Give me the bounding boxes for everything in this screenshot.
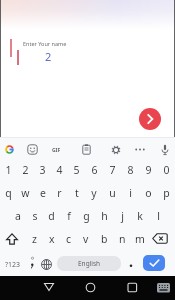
staticText: z [32, 232, 37, 246]
button[interactable]: 6 [85, 158, 103, 181]
staticText: e [40, 186, 46, 200]
button[interactable]: 2 [17, 158, 34, 181]
button[interactable]: p [157, 181, 175, 204]
button[interactable]: r [51, 181, 68, 204]
staticText: h [101, 209, 108, 223]
button[interactable] [26, 253, 39, 276]
staticText: Enter Your name [23, 40, 67, 47]
button[interactable]: 0 [157, 158, 175, 181]
button[interactable]: o [139, 181, 157, 204]
staticText: 0 [163, 163, 170, 177]
button[interactable]: 4 [51, 158, 68, 181]
staticText: 8 [127, 163, 134, 177]
staticText: x [49, 232, 55, 246]
button[interactable]: GIF [48, 145, 64, 155]
button[interactable] [124, 253, 138, 276]
staticText: r [57, 186, 62, 200]
button[interactable] [133, 144, 147, 155]
staticText: 5 [73, 163, 80, 177]
button[interactable] [27, 144, 38, 155]
staticText: p [163, 186, 170, 200]
button[interactable]: x [43, 227, 60, 250]
button[interactable]: 3 [34, 158, 51, 181]
staticText: 4 [56, 163, 63, 177]
button[interactable]: l [149, 204, 167, 227]
staticText: d [48, 209, 55, 223]
staticText: t [75, 186, 79, 200]
button[interactable]: English [57, 256, 121, 271]
button[interactable]: a [9, 204, 26, 227]
staticText: n [119, 232, 126, 246]
staticText: 2 [45, 49, 52, 64]
button[interactable] [143, 255, 165, 271]
staticText: g [83, 209, 90, 223]
staticText: 1 [5, 163, 12, 177]
button[interactable]: q [0, 181, 17, 204]
button[interactable]: d [43, 204, 60, 227]
staticText: English [78, 259, 101, 268]
button[interactable]: i [121, 181, 139, 204]
staticText: GIF [52, 147, 61, 154]
button[interactable]: j [113, 204, 131, 227]
button[interactable]: g [77, 204, 95, 227]
staticText: u [109, 186, 116, 200]
staticText: v [83, 232, 89, 246]
staticText: a [15, 209, 21, 223]
staticText: l [157, 209, 160, 223]
button[interactable]: n [113, 227, 131, 250]
button[interactable]: h [95, 204, 113, 227]
button[interactable]: b [95, 227, 113, 250]
button[interactable] [148, 227, 172, 250]
staticText: q [5, 186, 12, 200]
staticText: k [137, 209, 143, 223]
button[interactable]: 1 [0, 158, 17, 181]
button[interactable]: u [103, 181, 121, 204]
button[interactable]: k [131, 204, 149, 227]
button[interactable]: 8 [121, 158, 139, 181]
button[interactable]: w [17, 181, 34, 204]
button[interactable]: z [26, 227, 43, 250]
button[interactable]: f [60, 204, 77, 227]
button[interactable]: s [26, 204, 43, 227]
button[interactable]: e [34, 181, 51, 204]
staticText: o [145, 186, 152, 200]
button[interactable]: 7 [103, 158, 121, 181]
button[interactable]: t [68, 181, 85, 204]
button[interactable]: c [60, 227, 77, 250]
button[interactable]: m [131, 227, 149, 250]
button[interactable]: v [77, 227, 95, 250]
button[interactable] [4, 144, 15, 155]
staticText: i [129, 186, 132, 200]
button[interactable]: 5 [68, 158, 85, 181]
staticText: 3 [39, 163, 46, 177]
button[interactable]: y [85, 181, 103, 204]
staticText: y [91, 186, 97, 200]
staticText: ?123 [5, 260, 21, 270]
button[interactable] [1, 227, 23, 250]
button[interactable] [81, 144, 92, 155]
staticText: w [21, 186, 30, 200]
button[interactable]: ?123 [0, 253, 26, 276]
staticText: s [32, 209, 38, 223]
staticText: 6 [91, 163, 98, 177]
staticText: 9 [145, 163, 152, 177]
staticText: m [135, 232, 145, 246]
button[interactable] [111, 145, 121, 155]
staticText: 2 [22, 163, 29, 177]
staticText: c [66, 232, 72, 246]
button[interactable] [160, 144, 170, 156]
staticText: 7 [109, 163, 116, 177]
staticText: b [101, 232, 108, 246]
button[interactable] [139, 108, 161, 130]
button[interactable] [39, 253, 54, 276]
staticText: f [67, 209, 71, 223]
staticText: j [121, 209, 124, 223]
button[interactable]: 9 [139, 158, 157, 181]
